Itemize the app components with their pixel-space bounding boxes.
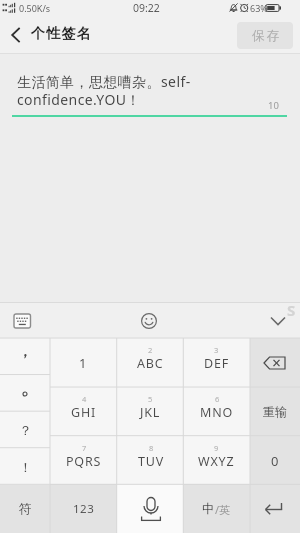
staticText: 4: [82, 394, 87, 404]
button[interactable]: 123: [50, 484, 117, 533]
staticText: 1: [79, 354, 88, 372]
button[interactable]: [4, 22, 30, 48]
staticText: 8: [149, 443, 154, 453]
staticText: 6: [215, 394, 220, 404]
staticText: 3: [214, 345, 219, 355]
button[interactable]: [134, 306, 164, 336]
button[interactable]: [8, 308, 38, 334]
button[interactable]: [0, 375, 50, 412]
staticText: 5: [148, 394, 153, 404]
button[interactable]: 9: [183, 436, 250, 485]
button[interactable]: [250, 484, 300, 533]
button[interactable]: 7: [50, 436, 117, 485]
staticText: TUV: [138, 453, 164, 470]
button[interactable]: 符: [0, 484, 50, 533]
button[interactable]: 4: [50, 387, 117, 436]
button[interactable]: 8: [117, 436, 184, 485]
staticText: 123: [73, 501, 95, 517]
button[interactable]: 中: [183, 484, 250, 533]
staticText: 0: [271, 452, 280, 470]
staticText: WXYZ: [198, 453, 235, 470]
button[interactable]: 0: [250, 436, 300, 485]
staticText: 中: [202, 501, 215, 517]
staticText: MNO: [200, 404, 234, 421]
staticText: ？: [19, 422, 32, 438]
button[interactable]: [0, 54, 300, 119]
button[interactable]: [117, 484, 184, 533]
button[interactable]: [0, 338, 50, 375]
staticText: 重输: [263, 404, 287, 419]
button[interactable]: 5: [117, 387, 184, 436]
button[interactable]: [250, 338, 300, 387]
button[interactable]: ！: [0, 448, 50, 485]
button[interactable]: 2: [117, 338, 184, 387]
staticText: ！: [19, 459, 32, 475]
staticText: ABC: [137, 355, 164, 372]
staticText: 09:22: [133, 1, 160, 15]
button[interactable]: 6: [183, 387, 250, 436]
staticText: 0.50K/s: [19, 2, 51, 14]
staticText: 个性签名: [31, 25, 92, 43]
staticText: 生活简单，思想嘈杂。self-: [17, 72, 191, 91]
staticText: 10: [268, 99, 279, 112]
button[interactable]: 3: [183, 338, 250, 387]
button[interactable]: 保存: [237, 22, 293, 49]
staticText: 9: [214, 443, 219, 453]
staticText: S: [287, 300, 296, 320]
staticText: GHI: [71, 404, 97, 421]
staticText: confidence.YOU！: [17, 90, 141, 109]
button[interactable]: 重输: [250, 387, 300, 436]
staticText: JKL: [140, 404, 161, 421]
button[interactable]: [264, 308, 292, 334]
staticText: 符: [19, 501, 32, 517]
button[interactable]: 1: [50, 338, 117, 387]
staticText: PQRS: [66, 453, 102, 470]
staticText: 2: [148, 345, 153, 355]
staticText: /英: [215, 502, 231, 517]
staticText: 保存: [251, 28, 280, 44]
staticText: 63%: [250, 2, 268, 14]
button[interactable]: ？: [0, 411, 50, 448]
staticText: 7: [82, 443, 87, 453]
staticText: DEF: [204, 355, 229, 372]
